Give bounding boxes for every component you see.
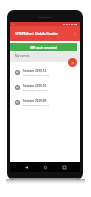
- button[interactable]: More options: [73, 32, 77, 36]
- button[interactable]: Back: [22, 163, 30, 171]
- button[interactable]: Session 2019-09: [10, 95, 80, 110]
- button[interactable]: Session 2019-12: [10, 65, 80, 80]
- button[interactable]: Session 2019-10: [10, 80, 80, 95]
- staticText: 2019-10-05 15:48 · 8 cd: [23, 89, 48, 92]
- button[interactable]: New session: [68, 58, 77, 67]
- button[interactable]: Home: [41, 163, 49, 171]
- staticText: My events: [15, 54, 30, 58]
- staticText: Session 2019-09: [23, 99, 47, 103]
- staticText: 2019-09-29 09:03 · 16 cd: [23, 104, 50, 107]
- staticText: SPORTident Mobile Reader: [15, 32, 59, 36]
- button[interactable]: WiFi mode connected: [10, 43, 77, 51]
- staticText: WiFi mode connected: [30, 46, 57, 49]
- button[interactable]: Recents: [60, 163, 68, 171]
- staticText: Session 2019-10: [23, 84, 47, 88]
- staticText: Session 2019-12: [23, 69, 47, 73]
- staticText: 2019-12-02 10:12 · 14 cd: [23, 74, 50, 77]
